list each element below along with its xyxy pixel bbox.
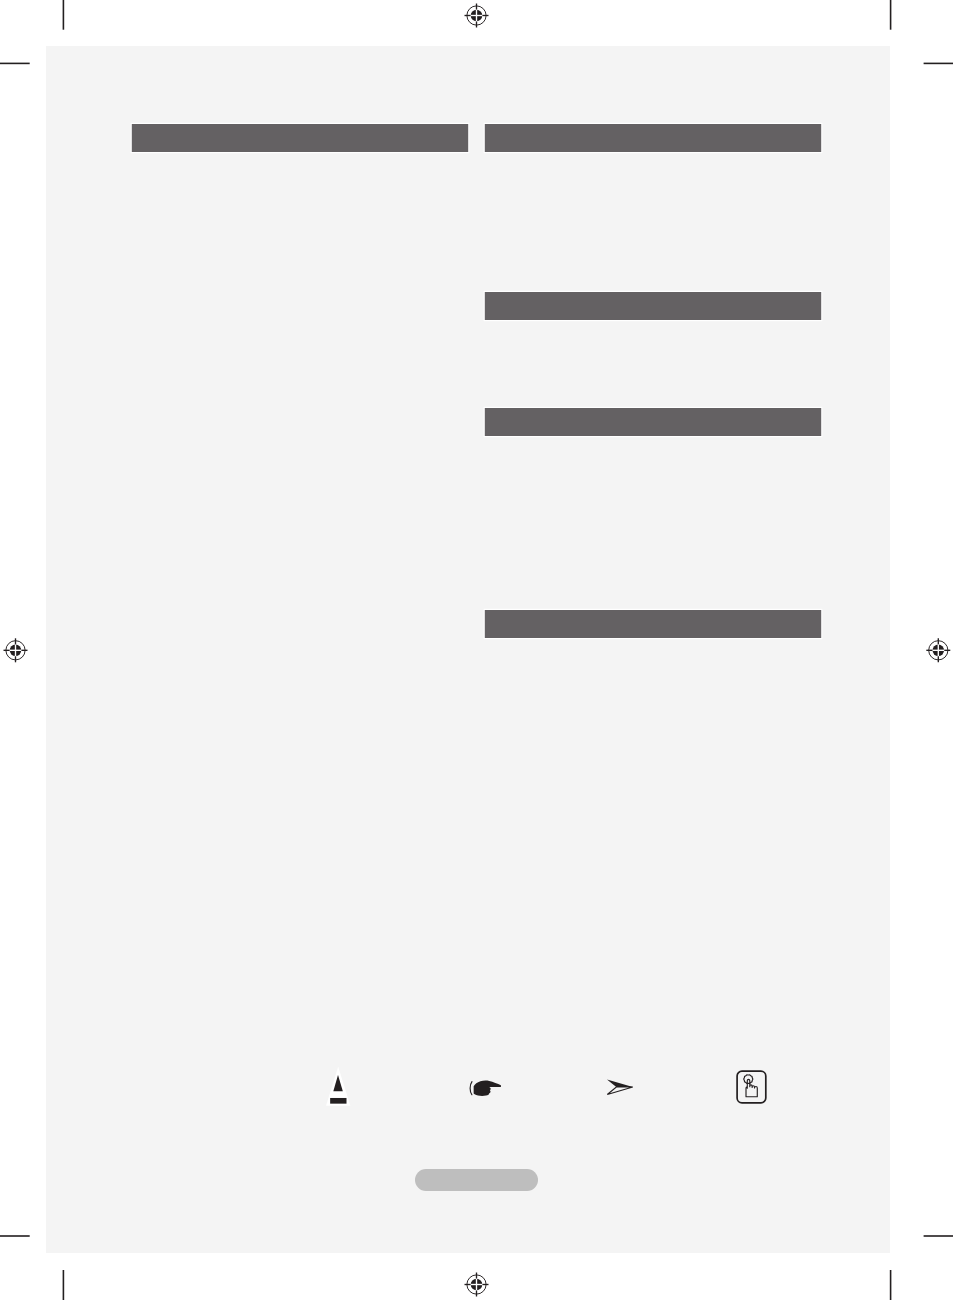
button[interactable]: Page marker xyxy=(415,1169,538,1191)
button[interactable]: Press direction xyxy=(602,1072,638,1102)
button[interactable] xyxy=(130,122,470,154)
button[interactable]: Caution xyxy=(320,1062,357,1110)
button[interactable] xyxy=(483,122,823,154)
button[interactable] xyxy=(483,290,823,322)
button[interactable]: Note xyxy=(462,1072,506,1102)
button[interactable]: Press button xyxy=(734,1066,769,1108)
button[interactable] xyxy=(483,608,823,640)
button[interactable] xyxy=(483,406,823,438)
